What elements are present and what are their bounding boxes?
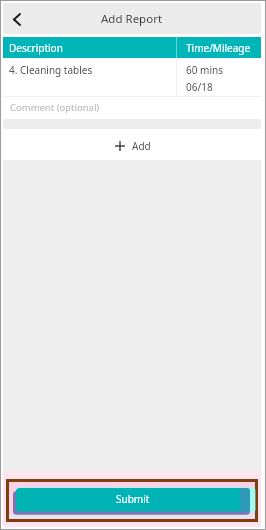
button[interactable]: Add — [3, 129, 261, 160]
staticText: 06/18 — [186, 80, 213, 94]
staticText: Time/Mileage — [186, 41, 251, 55]
staticText: Submit — [116, 492, 150, 506]
staticText: Add — [132, 139, 151, 153]
button[interactable]: Submit — [16, 488, 250, 512]
staticText: Description — [9, 41, 63, 55]
staticText: Add Report — [101, 11, 163, 27]
staticText: Comment (optional) — [10, 101, 100, 114]
staticText: 4. Cleaning tables — [9, 63, 93, 77]
staticText: 60 mins — [186, 63, 223, 77]
button[interactable]: Back — [5, 8, 27, 30]
